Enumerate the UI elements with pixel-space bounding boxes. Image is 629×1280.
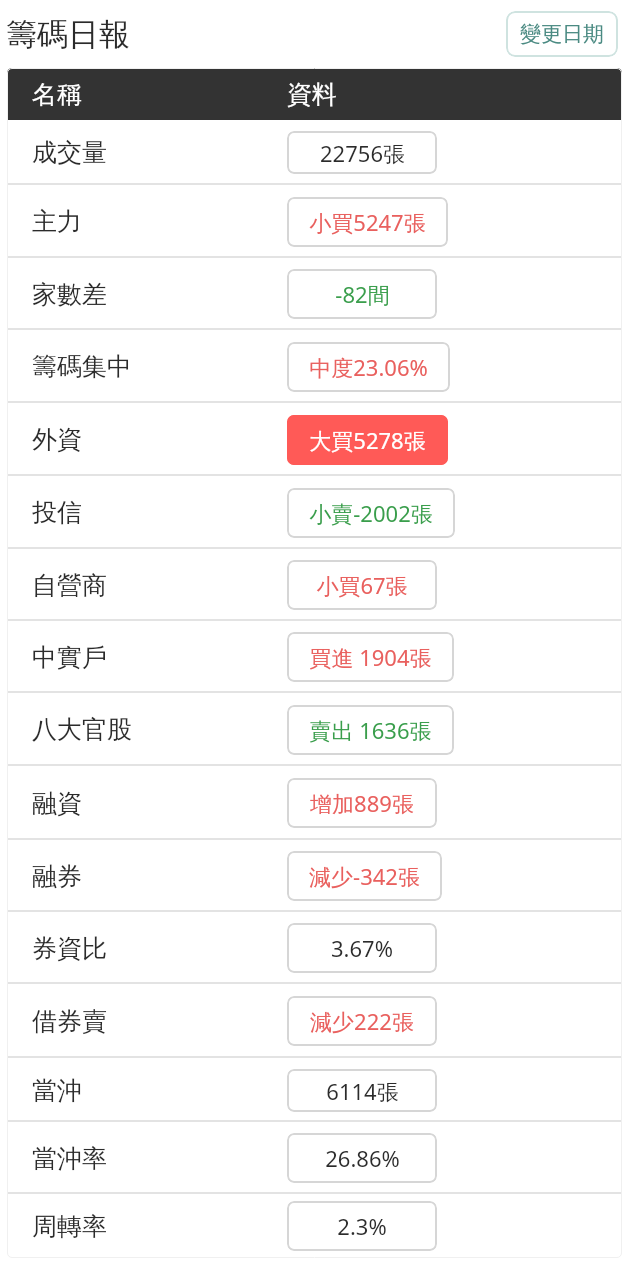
staticText: 主力 xyxy=(32,206,287,237)
staticText: 賣出 1636張 xyxy=(309,715,432,745)
staticText: 3.67% xyxy=(331,933,393,963)
button[interactable]: 投信 xyxy=(7,476,622,549)
button[interactable]: 26.86% xyxy=(287,1133,437,1183)
button[interactable]: 券資比 xyxy=(7,912,622,984)
staticText: 借券賣 xyxy=(32,1006,287,1037)
button[interactable]: 融資 xyxy=(7,766,622,840)
button[interactable]: 當沖 xyxy=(7,1058,622,1122)
button[interactable]: 周轉率 xyxy=(7,1194,622,1258)
staticText: 資料 xyxy=(287,79,337,110)
staticText: 增加889張 xyxy=(310,788,414,818)
staticText: 自營商 xyxy=(32,570,287,601)
button[interactable]: 外資 xyxy=(7,403,622,476)
button[interactable]: 買進 1904張 xyxy=(287,632,454,682)
button[interactable]: 減少222張 xyxy=(287,996,437,1046)
staticText: 小買67張 xyxy=(316,570,408,600)
staticText: 八大官股 xyxy=(32,714,287,745)
staticText: 籌碼日報 xyxy=(6,15,130,54)
button[interactable]: 大買5278張 xyxy=(287,415,448,465)
button[interactable]: 2.3% xyxy=(287,1201,437,1251)
staticText: -82間 xyxy=(335,279,390,309)
staticText: 22756張 xyxy=(320,138,405,168)
staticText: 券資比 xyxy=(32,933,287,964)
staticText: 家數差 xyxy=(32,279,287,310)
button[interactable]: 小買5247張 xyxy=(287,197,448,247)
button[interactable]: 賣出 1636張 xyxy=(287,705,454,755)
button[interactable]: 家數差 xyxy=(7,258,622,330)
button[interactable]: 3.67% xyxy=(287,923,437,973)
staticText: 外資 xyxy=(32,424,287,455)
staticText: 買進 1904張 xyxy=(309,642,432,672)
button[interactable]: 22756張 xyxy=(287,131,437,174)
staticText: 小賣-2002張 xyxy=(309,498,433,528)
staticText: 2.3% xyxy=(337,1211,387,1241)
staticText: 中度23.06% xyxy=(309,352,428,382)
staticText: 變更日期 xyxy=(520,21,604,47)
button[interactable]: -82間 xyxy=(287,269,437,319)
staticText: 26.86% xyxy=(325,1143,400,1173)
staticText: 6114張 xyxy=(326,1076,399,1106)
button[interactable]: 小賣-2002張 xyxy=(287,488,455,538)
button[interactable]: 自營商 xyxy=(7,549,622,621)
staticText: 成交量 xyxy=(32,137,287,168)
button[interactable]: 增加889張 xyxy=(287,778,437,828)
staticText: 籌碼集中 xyxy=(32,351,287,382)
staticText: 當沖 xyxy=(32,1075,287,1106)
button[interactable]: 變更日期 xyxy=(506,11,618,57)
button[interactable]: 小買67張 xyxy=(287,560,437,610)
staticText: 中實戶 xyxy=(32,642,287,673)
button[interactable]: 融券 xyxy=(7,840,622,912)
staticText: 名稱 xyxy=(32,79,287,110)
staticText: 融券 xyxy=(32,861,287,892)
staticText: 減少222張 xyxy=(310,1006,414,1036)
button[interactable]: 成交量 xyxy=(7,120,622,185)
staticText: 減少-342張 xyxy=(309,861,420,891)
staticText: 當沖率 xyxy=(32,1143,287,1174)
button[interactable]: 6114張 xyxy=(287,1069,437,1112)
button[interactable]: 中實戶 xyxy=(7,621,622,693)
staticText: 大買5278張 xyxy=(309,425,426,455)
staticText: 融資 xyxy=(32,788,287,819)
button[interactable]: 籌碼集中 xyxy=(7,330,622,403)
button[interactable]: 當沖率 xyxy=(7,1122,622,1194)
button[interactable]: 減少-342張 xyxy=(287,851,442,901)
button[interactable]: 借券賣 xyxy=(7,984,622,1058)
button[interactable]: 八大官股 xyxy=(7,693,622,766)
staticText: 小買5247張 xyxy=(309,207,426,237)
button[interactable]: 中度23.06% xyxy=(287,342,450,392)
staticText: 投信 xyxy=(32,497,287,528)
button[interactable]: 主力 xyxy=(7,185,622,258)
staticText: 周轉率 xyxy=(32,1211,287,1242)
